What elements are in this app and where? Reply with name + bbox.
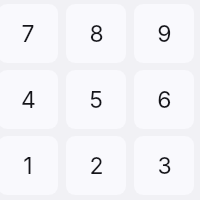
button[interactable]: 3 [134, 136, 194, 195]
button[interactable]: 8 [66, 4, 126, 63]
staticText: 1 [23, 152, 33, 180]
staticText: 5 [89, 86, 103, 114]
button[interactable]: 4 [0, 70, 58, 129]
staticText: 3 [157, 152, 172, 180]
button[interactable]: 6 [134, 70, 194, 129]
staticText: 7 [21, 20, 35, 48]
button[interactable]: 5 [66, 70, 126, 129]
staticText: 6 [157, 86, 172, 114]
staticText: 2 [89, 152, 104, 180]
button[interactable]: 7 [0, 4, 58, 63]
staticText: 9 [157, 20, 172, 48]
button[interactable]: 1 [0, 136, 58, 195]
button[interactable]: 2 [66, 136, 126, 195]
staticText: 4 [21, 86, 36, 114]
button[interactable]: 9 [134, 4, 194, 63]
staticText: 8 [89, 20, 104, 48]
